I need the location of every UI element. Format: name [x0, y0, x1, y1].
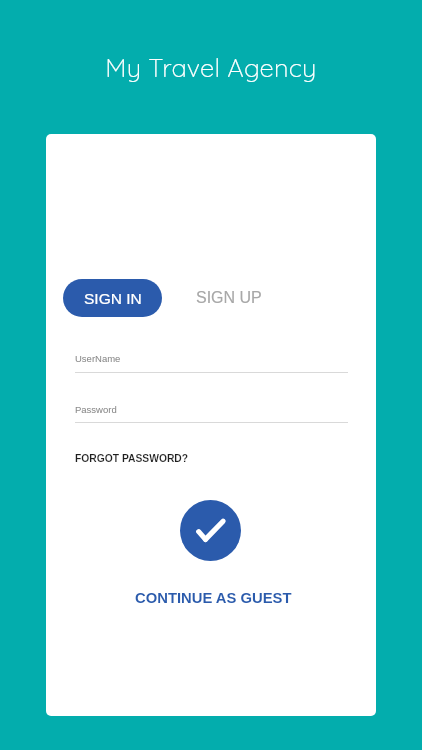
staticText: FORGOT PASSWORD? — [75, 453, 189, 465]
staticText: Password — [75, 404, 117, 415]
button[interactable]: CONTINUE AS GUEST — [128, 581, 298, 603]
button[interactable]: SIGN UP — [180, 279, 278, 317]
button[interactable]: Password — [75, 396, 348, 424]
button[interactable]: Sign in — [180, 500, 241, 561]
button[interactable]: UserName — [75, 345, 348, 373]
staticText: My Travel Agency — [0, 51, 422, 83]
button[interactable]: FORGOT PASSWORD? — [75, 445, 195, 463]
staticText: SIGN UP — [196, 289, 262, 307]
staticText: CONTINUE AS GUEST — [135, 590, 292, 607]
staticText: SIGN IN — [84, 290, 142, 307]
button[interactable]: SIGN IN — [63, 279, 162, 317]
staticText: UserName — [75, 353, 121, 364]
